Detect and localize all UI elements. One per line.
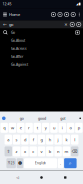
button[interactable]: e xyxy=(17,123,24,133)
staticText: u xyxy=(53,125,55,130)
button[interactable]: t xyxy=(34,123,41,133)
staticText: f xyxy=(33,137,34,142)
staticText: i xyxy=(62,125,63,130)
staticText: s xyxy=(16,137,18,142)
staticText: ← xyxy=(3,22,7,27)
button[interactable]: ⌫ xyxy=(71,146,78,156)
button[interactable]: . xyxy=(58,158,63,168)
staticText: got xyxy=(60,116,65,121)
button[interactable]: u xyxy=(50,123,58,133)
button[interactable]: q xyxy=(0,123,8,133)
staticText: v xyxy=(40,149,42,154)
staticText: Go-Against xyxy=(11,62,28,67)
staticText: go xyxy=(9,22,13,27)
staticText: Go xyxy=(11,30,15,35)
staticText: j xyxy=(58,137,59,142)
staticText: English xyxy=(35,161,46,165)
button[interactable]: w xyxy=(9,123,16,133)
button[interactable]: Go-After xyxy=(0,52,83,60)
staticText: ⇧ xyxy=(7,149,10,154)
staticText: Home xyxy=(9,12,20,17)
button[interactable]: Go-Across xyxy=(0,44,83,52)
staticText: n xyxy=(57,149,59,154)
button[interactable]: j xyxy=(54,135,62,145)
staticText: q xyxy=(3,125,5,130)
button[interactable]: m xyxy=(63,146,70,156)
button[interactable]: ⌕ xyxy=(64,158,77,168)
button[interactable]: Toolbar action xyxy=(70,9,76,20)
staticText: ⌫ xyxy=(72,149,78,154)
button[interactable]: Toolbar action xyxy=(50,9,57,20)
staticText: e xyxy=(20,125,22,130)
button[interactable]: y xyxy=(42,123,49,133)
button[interactable]: a xyxy=(4,135,12,145)
button[interactable]: x xyxy=(21,146,29,156)
button[interactable]: Menu xyxy=(1,9,9,20)
button[interactable]: Go-Against xyxy=(0,60,83,68)
staticText: r xyxy=(28,125,30,130)
staticText: y xyxy=(45,125,47,130)
button[interactable]: Home xyxy=(35,170,47,184)
staticText: c xyxy=(32,149,34,154)
staticText: p xyxy=(78,125,80,130)
button[interactable]: Back xyxy=(1,20,9,29)
staticText: ◁ xyxy=(16,175,19,179)
staticText: Go-Across xyxy=(11,46,27,51)
staticText: 12:45 xyxy=(2,2,11,6)
button[interactable]: f xyxy=(29,135,37,145)
button[interactable]: r xyxy=(25,123,33,133)
button[interactable]: ⇧ xyxy=(4,146,12,156)
button[interactable]: Recent apps xyxy=(59,170,71,184)
staticText: Go-After xyxy=(11,54,23,59)
staticText: l xyxy=(74,137,75,142)
button[interactable]: Clear xyxy=(62,20,69,29)
staticText: x xyxy=(24,149,26,154)
staticText: k xyxy=(65,137,67,142)
button[interactable]: Toolbar action xyxy=(57,9,63,20)
button[interactable]: i xyxy=(58,123,66,133)
button[interactable]: v xyxy=(38,146,45,156)
staticText: ?123 xyxy=(8,161,15,165)
staticText: ◢ xyxy=(76,2,78,6)
button[interactable]: z xyxy=(13,146,20,156)
button[interactable]: k xyxy=(63,135,70,145)
staticText: z xyxy=(16,149,18,154)
button[interactable]: Go xyxy=(0,28,83,36)
staticText: a xyxy=(7,137,9,142)
button[interactable]: b xyxy=(46,146,53,156)
staticText: d xyxy=(24,137,26,142)
staticText: o xyxy=(69,125,71,130)
staticText: ✕ xyxy=(64,22,67,27)
staticText: m xyxy=(64,149,68,154)
button[interactable]: p xyxy=(75,123,83,133)
button[interactable]: n xyxy=(54,146,62,156)
staticText: g xyxy=(40,137,42,142)
staticText: ☻ xyxy=(18,161,22,166)
staticText: go xyxy=(20,116,24,121)
button[interactable]: o xyxy=(67,123,74,133)
button[interactable]: English xyxy=(24,158,57,168)
button[interactable]: c xyxy=(29,146,37,156)
button[interactable]: More options xyxy=(76,9,82,20)
button[interactable]: d xyxy=(21,135,29,145)
button[interactable]: Back xyxy=(12,170,24,184)
staticText: . xyxy=(60,160,61,166)
button[interactable]: ☻ xyxy=(17,158,23,168)
staticText: ⌕ xyxy=(69,161,72,166)
button[interactable]: s xyxy=(13,135,20,145)
button[interactable]: h xyxy=(46,135,53,145)
button[interactable]: Voice search xyxy=(69,20,75,29)
button[interactable]: Lens search xyxy=(75,20,82,29)
staticText: Go-About xyxy=(11,38,25,43)
staticText: h xyxy=(49,137,51,142)
button[interactable]: Toolbar action xyxy=(63,9,70,20)
staticText: good xyxy=(38,116,46,121)
staticText: t xyxy=(37,125,38,130)
button[interactable]: ?123 xyxy=(6,158,16,168)
button[interactable]: Go-About xyxy=(0,36,83,44)
staticText: w xyxy=(11,125,14,130)
staticText: b xyxy=(49,149,51,154)
button[interactable]: l xyxy=(71,135,78,145)
button[interactable]: g xyxy=(38,135,45,145)
